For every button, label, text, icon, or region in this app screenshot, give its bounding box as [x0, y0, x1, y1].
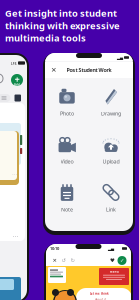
staticText: ▂▄: [117, 55, 123, 60]
staticText: Get insight into student thinking with e…: [5, 7, 120, 44]
staticText: LTE: [10, 60, 16, 66]
staticText: Link: [106, 206, 116, 213]
staticText: ✓: [120, 257, 124, 264]
staticText: Upload: [102, 158, 119, 165]
staticText: Note: [61, 206, 73, 213]
staticText: ⋯: [12, 171, 17, 177]
staticText: Let me think: [90, 292, 109, 295]
button[interactable]: Close: [49, 65, 59, 75]
staticText: ♥: [110, 257, 115, 264]
button[interactable]: Favorite: [108, 256, 117, 265]
staticText: ↺: [61, 257, 65, 264]
button[interactable]: Note: [45, 174, 89, 222]
staticText: Post Student Work: [66, 66, 111, 74]
staticText: 10:10: [50, 246, 59, 251]
staticText: about it: [95, 298, 106, 300]
button[interactable]: Undo: [59, 256, 68, 265]
staticText: +: [14, 73, 19, 85]
button[interactable]: Video: [45, 126, 89, 174]
button[interactable]: Done: [117, 255, 127, 265]
button[interactable]: Link: [89, 174, 133, 222]
button[interactable]: Drawing: [89, 78, 133, 126]
staticText: Drawing: [101, 110, 121, 117]
staticText: Wants: [109, 270, 118, 273]
staticText: Video: [60, 158, 73, 165]
staticText: ✕: [52, 257, 56, 264]
staticText: ↻: [70, 257, 74, 264]
staticText: • • •: [13, 235, 18, 238]
button[interactable]: Redo: [68, 256, 77, 265]
button[interactable]: Upload: [89, 126, 133, 174]
button[interactable]: Photo: [45, 78, 89, 126]
staticText: Add: [14, 83, 20, 86]
staticText: ✕: [51, 66, 57, 74]
staticText: ▂▄: [108, 246, 114, 251]
button[interactable]: Close: [50, 256, 59, 265]
staticText: Photo: [60, 110, 74, 117]
